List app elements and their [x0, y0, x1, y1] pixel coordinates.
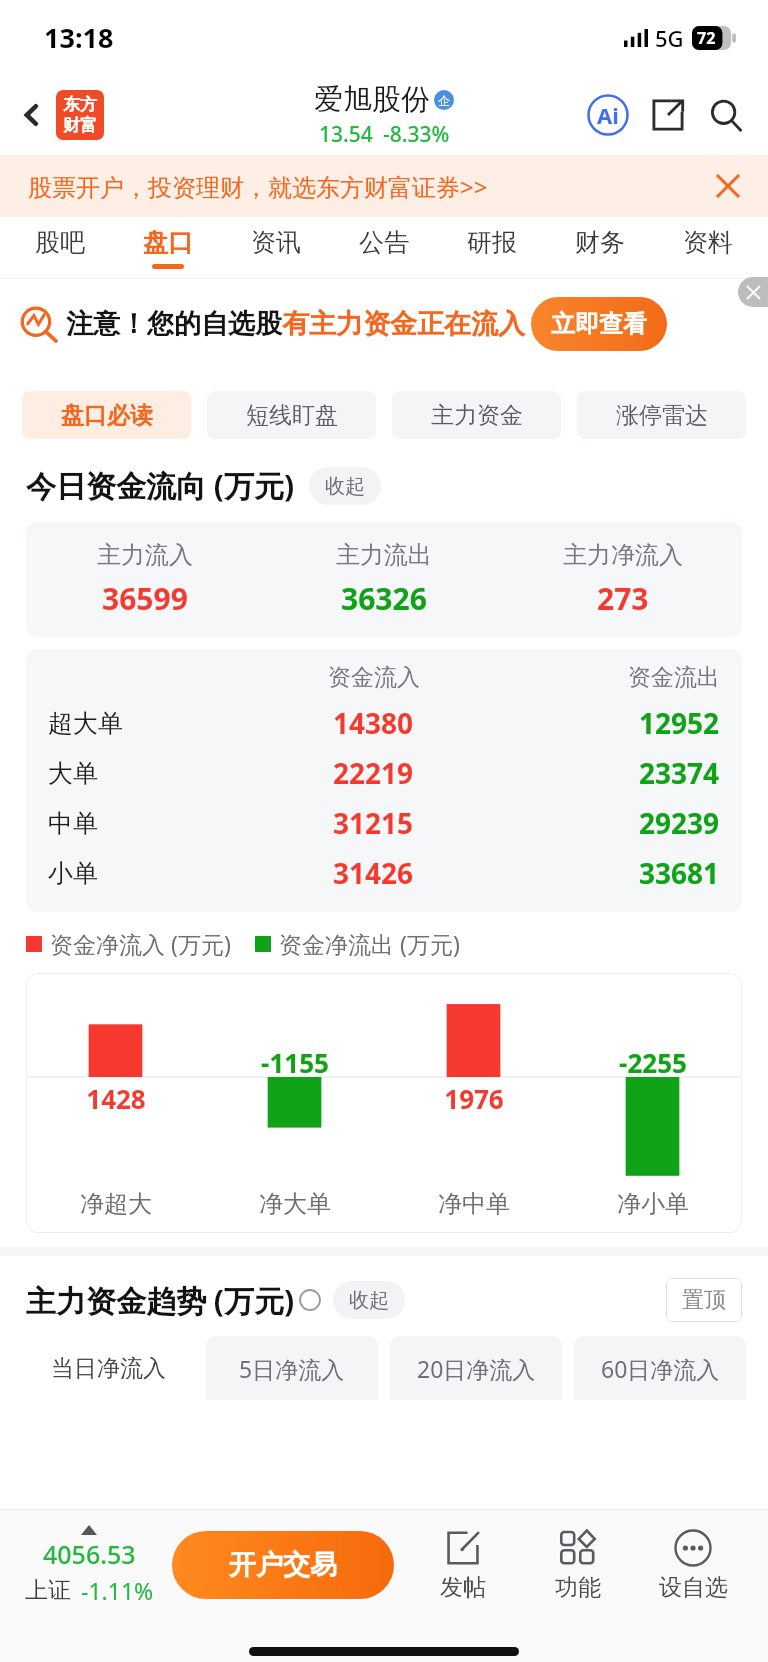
- button[interactable]: 注意！: [20, 297, 750, 351]
- staticText: 今日资金流向 (万元): [26, 465, 295, 506]
- button[interactable]: 5日净流入: [206, 1336, 378, 1400]
- staticText: 主力流出: [336, 540, 432, 570]
- button[interactable]: 股吧: [6, 217, 114, 279]
- staticText: 12952: [639, 704, 720, 742]
- button[interactable]: East Money home: [56, 90, 104, 140]
- staticText: 14380: [333, 704, 414, 742]
- staticText: 开户交易: [229, 1548, 337, 1582]
- button[interactable]: 20日净流入: [390, 1336, 562, 1400]
- staticText: 5G: [655, 23, 684, 53]
- button[interactable]: 置顶: [666, 1278, 742, 1322]
- button[interactable]: 60日净流入: [574, 1336, 746, 1400]
- staticText: 20日净流入: [417, 1353, 536, 1384]
- staticText: 资金流出: [628, 663, 720, 692]
- button[interactable]: AI assistant: [582, 89, 634, 141]
- staticText: 小单: [48, 858, 98, 889]
- staticText: 净中单: [438, 1189, 510, 1219]
- staticText: 主力资金趋势 (万元): [26, 1280, 295, 1321]
- staticText: 33681: [639, 854, 720, 892]
- button[interactable]: 财务: [546, 217, 654, 279]
- staticText: 29239: [639, 804, 720, 842]
- staticText: 5日净流入: [239, 1353, 345, 1384]
- button[interactable]: 涨停雷达: [577, 391, 746, 439]
- button[interactable]: 收起: [333, 1281, 405, 1319]
- staticText: 股票开户，投资理财，就选东方财富证券>>: [28, 170, 488, 203]
- staticText: 13.54: [319, 120, 373, 149]
- staticText: 31215: [333, 804, 414, 842]
- staticText: 收起: [349, 1288, 389, 1313]
- staticText: 设自选: [659, 1573, 728, 1602]
- button[interactable]: 立即查看: [531, 297, 667, 351]
- staticText: 涨停雷达: [616, 401, 708, 430]
- button[interactable]: 开户交易: [172, 1531, 394, 1599]
- staticText: 大单: [48, 758, 98, 789]
- button[interactable]: 收起: [309, 467, 381, 505]
- staticText: 资讯: [251, 227, 301, 258]
- staticText: 您的自选股: [147, 307, 282, 341]
- button[interactable]: 资料: [654, 217, 762, 279]
- staticText: 资金净流出 (万元): [279, 928, 460, 959]
- staticText: 净超大: [80, 1189, 152, 1219]
- staticText: 资金净流入 (万元): [50, 928, 231, 959]
- staticText: 资金流入: [328, 663, 420, 692]
- staticText: 有主力资金正在流入: [282, 307, 525, 341]
- button[interactable]: 研报: [438, 217, 546, 279]
- staticText: -1.11%: [81, 1575, 154, 1606]
- staticText: 1428: [86, 1081, 146, 1116]
- staticText: 研报: [467, 227, 517, 258]
- staticText: 净小单: [617, 1189, 689, 1219]
- staticText: 股吧: [35, 227, 85, 258]
- staticText: 23374: [639, 754, 720, 792]
- button[interactable]: 发帖: [408, 1529, 518, 1602]
- button[interactable]: 主力资金: [392, 391, 561, 439]
- button[interactable]: 4056.53: [14, 1525, 164, 1606]
- staticText: 36326: [341, 578, 427, 619]
- button[interactable]: Share: [642, 89, 694, 141]
- staticText: 超大单: [48, 708, 123, 739]
- staticText: 22219: [333, 754, 414, 792]
- staticText: 财务: [575, 227, 625, 258]
- staticText: 72: [697, 27, 716, 49]
- staticText: 36599: [102, 578, 188, 619]
- staticText: 主力资金: [431, 401, 523, 430]
- staticText: 功能: [555, 1573, 601, 1602]
- button[interactable]: 盘口必读: [22, 391, 191, 439]
- staticText: 财富: [63, 115, 97, 136]
- button[interactable]: 设自选: [638, 1529, 748, 1602]
- staticText: 收起: [325, 474, 365, 499]
- staticText: 发帖: [440, 1573, 486, 1602]
- staticText: 公告: [359, 227, 409, 258]
- staticText: 注意！: [66, 307, 147, 341]
- button[interactable]: 短线盯盘: [207, 391, 376, 439]
- staticText: 盘口必读: [61, 401, 153, 430]
- staticText: 上证: [25, 1576, 71, 1605]
- staticText: 置顶: [682, 1286, 726, 1314]
- staticText: 60日净流入: [601, 1353, 720, 1384]
- button[interactable]: 当日净流入: [22, 1336, 194, 1400]
- staticText: Ai: [597, 100, 619, 130]
- staticText: 资料: [683, 227, 733, 258]
- button[interactable]: Help: [299, 1289, 321, 1311]
- button[interactable]: 功能: [523, 1529, 633, 1602]
- staticText: -1155: [261, 1045, 329, 1080]
- staticText: 273: [597, 578, 649, 619]
- button[interactable]: 资讯: [222, 217, 330, 279]
- staticText: -8.33%: [383, 120, 450, 149]
- button[interactable]: Close promotion: [706, 164, 750, 208]
- staticText: 主力净流入: [563, 540, 683, 570]
- staticText: 4056.53: [43, 1537, 136, 1571]
- staticText: 企: [438, 93, 450, 108]
- button[interactable]: 盘口: [114, 217, 222, 279]
- staticText: 盘口: [143, 227, 193, 258]
- button[interactable]: 公告: [330, 217, 438, 279]
- staticText: 当日净流入: [51, 1354, 166, 1383]
- staticText: 净大单: [259, 1189, 331, 1219]
- button[interactable]: Back: [10, 93, 54, 137]
- button[interactable]: 股票开户，投资理财，就选东方财富证券>>: [0, 155, 768, 217]
- button[interactable]: Close banner: [738, 277, 768, 307]
- staticText: 主力流入: [97, 540, 193, 570]
- staticText: 立即查看: [551, 309, 647, 339]
- staticText: -2255: [619, 1045, 687, 1080]
- button[interactable]: Search: [700, 89, 752, 141]
- staticText: 中单: [48, 808, 98, 839]
